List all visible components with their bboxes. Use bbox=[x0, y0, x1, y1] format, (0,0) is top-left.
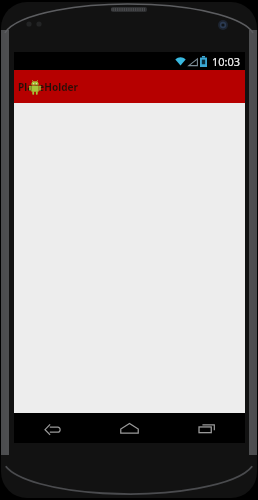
staticText: 10:03 bbox=[212, 54, 241, 69]
staticText: PlaceHolder bbox=[18, 80, 78, 94]
button[interactable]: Recent apps bbox=[168, 413, 245, 443]
button[interactable]: PlaceHolder bbox=[14, 70, 245, 103]
button[interactable]: Back bbox=[14, 413, 91, 443]
button[interactable]: Home bbox=[91, 413, 168, 443]
